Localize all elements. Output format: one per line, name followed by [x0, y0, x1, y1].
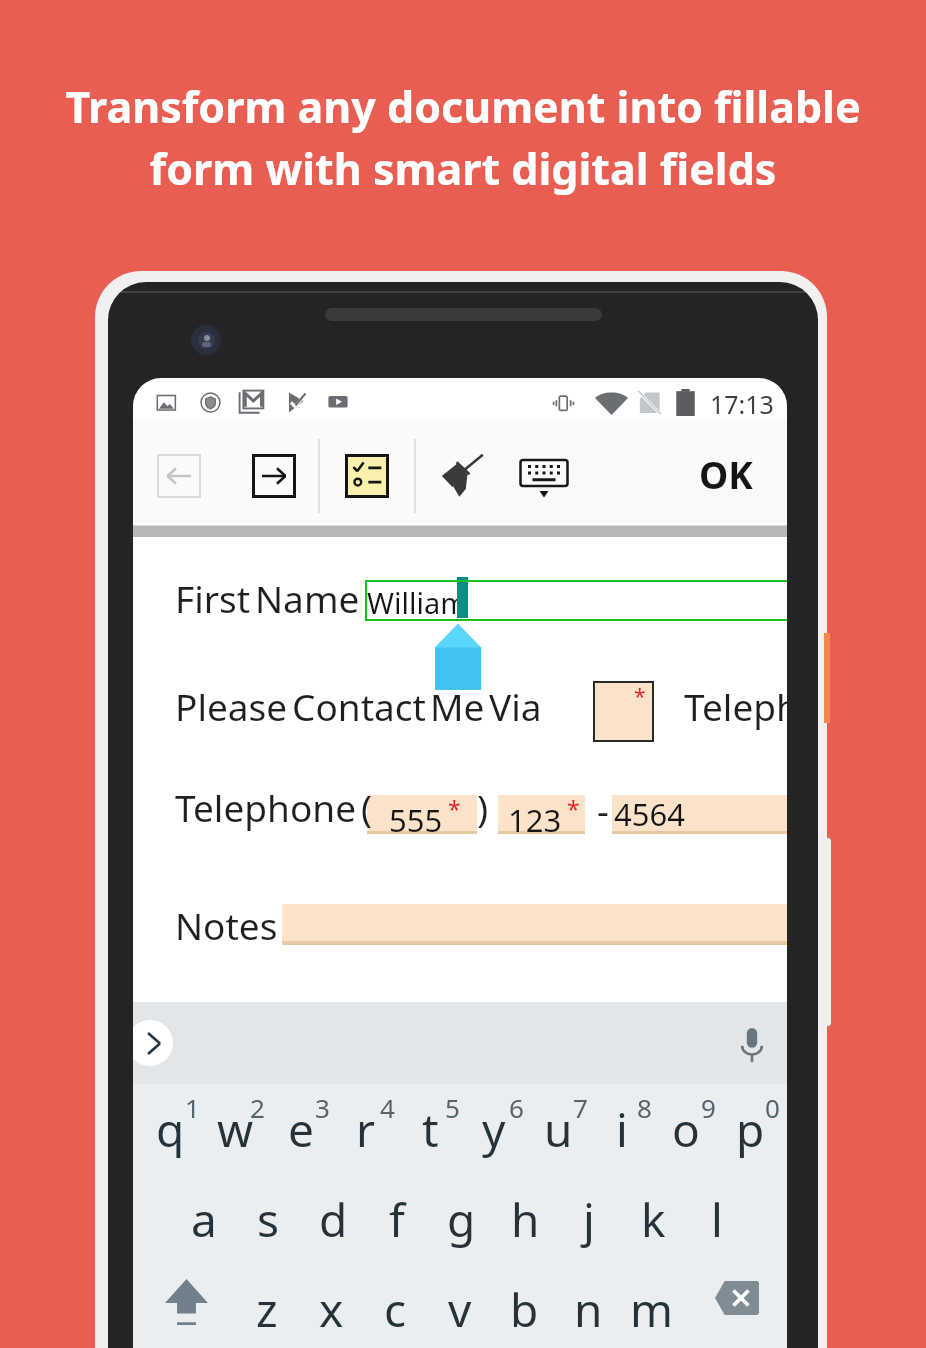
- staticText: ): [477, 782, 489, 832]
- button[interactable]: 5: [398, 1078, 462, 1164]
- button[interactable]: 8: [590, 1078, 654, 1164]
- staticText: z: [256, 1278, 278, 1341]
- button[interactable]: Phone number: [612, 795, 787, 833]
- staticText: g: [447, 1188, 476, 1251]
- staticText: o: [672, 1098, 700, 1161]
- staticText: b: [510, 1278, 539, 1341]
- staticText: i: [616, 1098, 628, 1161]
- staticText: t: [422, 1098, 439, 1161]
- button[interactable]: Backspace: [705, 1266, 769, 1330]
- staticText: m: [630, 1278, 674, 1341]
- staticText: q: [156, 1098, 185, 1161]
- button[interactable]: 4: [333, 1078, 398, 1164]
- staticText: k: [641, 1188, 666, 1251]
- button[interactable]: z: [235, 1266, 299, 1348]
- staticText: f: [389, 1188, 405, 1251]
- button[interactable]: Contact me by telephone: [593, 681, 654, 742]
- staticText: e: [288, 1098, 314, 1161]
- button[interactable]: s: [236, 1176, 301, 1262]
- staticText: 4: [380, 1090, 395, 1125]
- staticText: 4564: [614, 793, 685, 831]
- button[interactable]: k: [621, 1176, 685, 1262]
- staticText: v: [448, 1278, 472, 1341]
- staticText: h: [511, 1188, 540, 1251]
- staticText: n: [574, 1278, 603, 1341]
- button[interactable]: Next field: [252, 454, 296, 498]
- staticText: *: [567, 793, 580, 824]
- staticText: William: [367, 583, 468, 622]
- staticText: First: [175, 573, 251, 623]
- button[interactable]: c: [363, 1266, 427, 1348]
- button[interactable]: l: [685, 1176, 749, 1262]
- button[interactable]: First name input: [365, 580, 787, 621]
- staticText: 8: [637, 1090, 652, 1125]
- button[interactable]: 2: [203, 1078, 268, 1164]
- staticText: 123: [508, 799, 562, 838]
- staticText: 7: [573, 1090, 588, 1125]
- staticText: Me: [430, 681, 485, 731]
- button[interactable]: Previous field: [157, 454, 201, 498]
- button[interactable]: b: [492, 1266, 556, 1348]
- staticText: l: [711, 1188, 723, 1251]
- staticText: 555: [389, 799, 443, 838]
- staticText: w: [217, 1098, 254, 1161]
- button[interactable]: x: [299, 1266, 363, 1348]
- staticText: Transform any document into fillable for…: [65, 77, 861, 197]
- button[interactable]: Shift: [158, 1274, 215, 1331]
- button[interactable]: d: [301, 1176, 365, 1262]
- staticText: Telephone: [175, 782, 357, 832]
- staticText: 3: [315, 1090, 330, 1125]
- button[interactable]: v: [428, 1266, 492, 1348]
- staticText: a: [191, 1188, 217, 1251]
- staticText: y: [482, 1098, 506, 1161]
- staticText: 0: [765, 1090, 780, 1125]
- staticText: 2: [250, 1090, 265, 1125]
- button[interactable]: 1: [138, 1078, 203, 1164]
- staticText: *: [634, 682, 646, 711]
- button[interactable]: 7: [526, 1078, 590, 1164]
- staticText: -: [597, 784, 609, 834]
- button[interactable]: Voice input: [728, 1021, 776, 1069]
- button[interactable]: 6: [462, 1078, 526, 1164]
- staticText: 17:13: [710, 387, 774, 421]
- staticText: p: [736, 1098, 765, 1161]
- staticText: Name: [255, 573, 360, 623]
- button[interactable]: 555: [367, 795, 477, 834]
- staticText: Contact: [292, 681, 426, 731]
- staticText: d: [319, 1188, 348, 1251]
- button[interactable]: Hide keyboard: [515, 447, 573, 505]
- button[interactable]: f: [365, 1176, 429, 1262]
- button[interactable]: j: [557, 1176, 621, 1262]
- button[interactable]: a: [171, 1176, 236, 1262]
- button[interactable]: More suggestions: [133, 1020, 173, 1066]
- staticText: u: [544, 1098, 573, 1161]
- staticText: Please: [175, 681, 288, 731]
- button[interactable]: 0: [718, 1078, 782, 1164]
- staticText: (: [361, 782, 373, 832]
- staticText: s: [257, 1188, 280, 1251]
- staticText: j: [583, 1188, 595, 1251]
- button[interactable]: n: [556, 1266, 620, 1348]
- staticText: Notes: [175, 900, 278, 950]
- staticText: Via: [489, 681, 542, 731]
- button[interactable]: 3: [268, 1078, 333, 1164]
- button[interactable]: h: [493, 1176, 557, 1262]
- staticText: *: [448, 793, 461, 824]
- staticText: 9: [701, 1090, 716, 1125]
- staticText: c: [384, 1278, 407, 1341]
- button[interactable]: 123: [498, 795, 585, 834]
- staticText: x: [319, 1278, 344, 1341]
- staticText: r: [356, 1098, 375, 1161]
- button[interactable]: g: [429, 1176, 493, 1262]
- button[interactable]: Form fields: [345, 454, 389, 498]
- button[interactable]: Notes field: [282, 904, 787, 945]
- staticText: 5: [445, 1090, 460, 1125]
- button[interactable]: Clear form: [434, 447, 492, 505]
- button[interactable]: 9: [654, 1078, 718, 1164]
- staticText: Teleph: [684, 681, 787, 731]
- button[interactable]: OK: [685, 443, 767, 505]
- button[interactable]: m: [620, 1266, 684, 1348]
- staticText: 6: [509, 1090, 524, 1125]
- staticText: 1: [185, 1090, 200, 1125]
- staticText: OK: [699, 449, 753, 499]
